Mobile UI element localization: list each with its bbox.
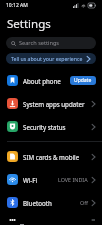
staticText: Wi-Fi — [23, 176, 38, 184]
staticText: Tell us about your experience — [11, 55, 83, 62]
button[interactable]: Security status — [0, 115, 102, 138]
staticText: 10:12 AM — [6, 2, 28, 9]
staticText: Update — [74, 77, 92, 84]
staticText: Security status — [23, 123, 66, 131]
button[interactable]: About phone — [0, 69, 102, 92]
staticText: Search settings — [19, 39, 60, 47]
button[interactable]: Update — [70, 76, 96, 85]
staticText: Settings — [7, 16, 51, 32]
staticText: About phone — [23, 77, 61, 85]
button[interactable]: System apps updater — [0, 92, 102, 115]
button[interactable]: Search settings — [6, 37, 96, 49]
staticText: SIM cards & mobile networks — [23, 153, 91, 161]
button[interactable]: Connection & sharing — [0, 214, 102, 225]
staticText: System apps updater — [23, 100, 85, 108]
button[interactable]: Tell us about your experience — [6, 53, 96, 64]
staticText: Off — [80, 199, 88, 206]
button[interactable]: SIM cards & mobile networks — [0, 145, 102, 168]
staticText: Bluetooth — [23, 199, 52, 207]
staticText: LOVE INDIA — [58, 176, 88, 183]
button[interactable]: Wi-Fi — [0, 168, 102, 191]
button[interactable]: Bluetooth — [0, 191, 102, 214]
